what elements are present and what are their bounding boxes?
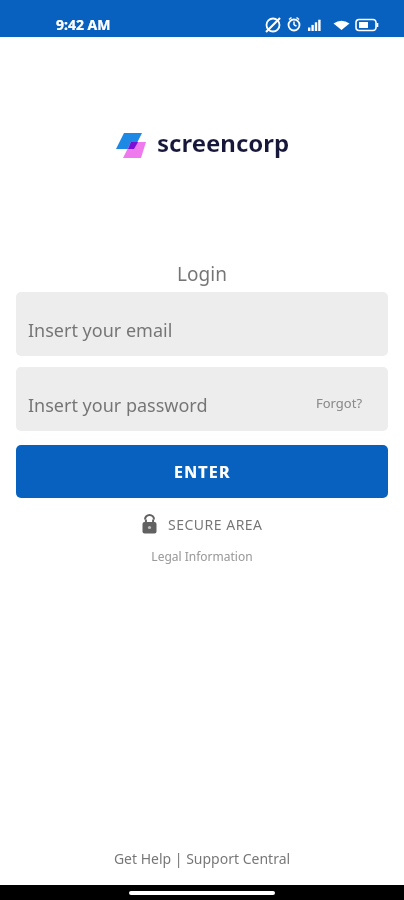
button[interactable]: Legal Information — [0, 548, 404, 564]
button[interactable]: ENTER — [16, 445, 388, 498]
staticText: Login — [0, 261, 404, 287]
button[interactable]: Insert your password — [16, 367, 388, 431]
staticText: 9:42 AM — [56, 15, 111, 34]
staticText: Insert your password — [28, 393, 208, 418]
button[interactable]: SECURE AREA — [142, 514, 263, 534]
staticText: screencorp — [157, 126, 290, 159]
staticText: ENTER — [174, 461, 231, 483]
staticText: Insert your email — [28, 318, 173, 343]
button[interactable]: Forgot? — [316, 394, 363, 412]
staticText: SECURE AREA — [168, 515, 263, 534]
button[interactable]: Insert your email — [16, 292, 388, 356]
button[interactable]: Get Help | Support Central — [0, 849, 404, 868]
